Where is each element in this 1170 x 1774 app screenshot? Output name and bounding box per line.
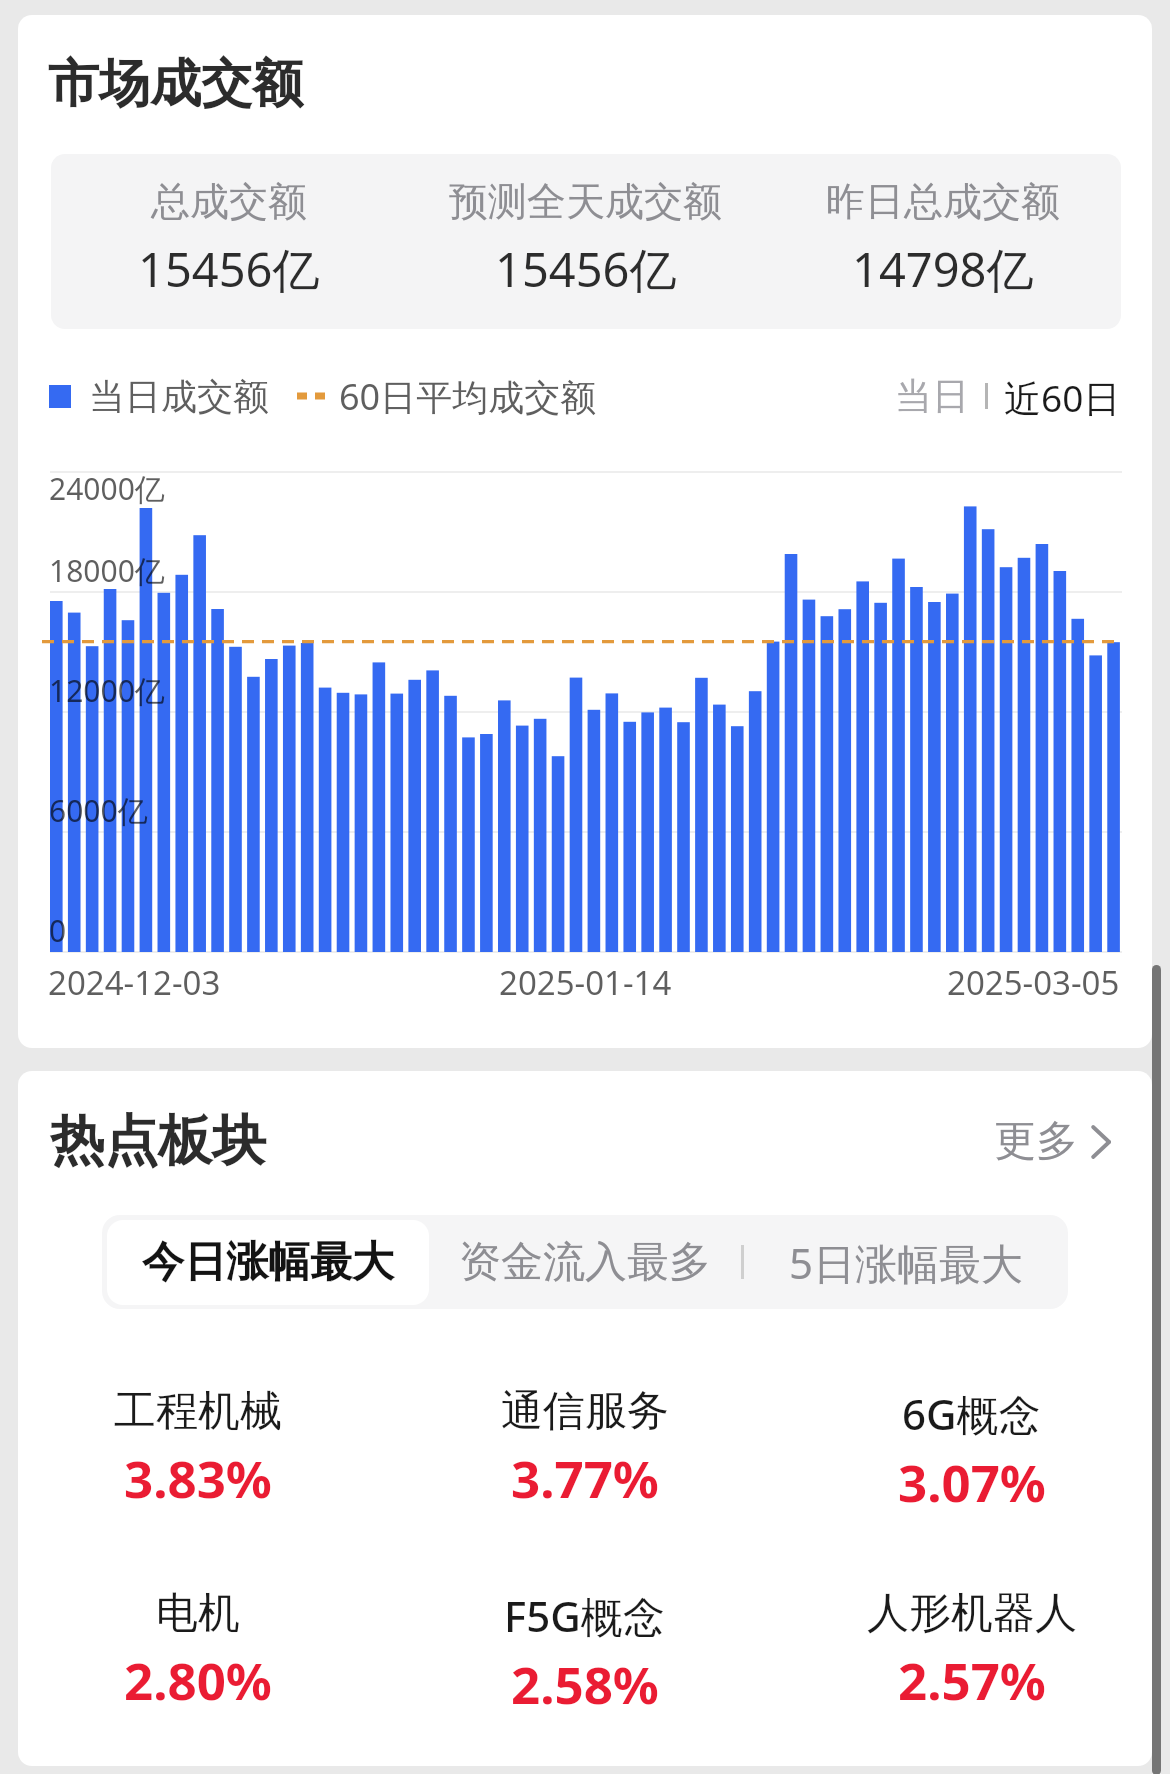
staticText: 电机 — [156, 1587, 240, 1640]
button[interactable]: 近60日 — [1004, 372, 1121, 420]
button[interactable]: 电机 — [18, 1587, 391, 1714]
staticText: 60日平均成交额 — [339, 372, 597, 420]
button[interactable]: 当日 — [895, 372, 969, 420]
staticText: 昨日总成交额 — [826, 177, 1060, 226]
staticText: 更多 — [994, 1115, 1078, 1168]
staticText: 市场成交额 — [48, 52, 303, 116]
staticText: 近60日 — [1004, 372, 1121, 420]
staticText: 热点板块 — [50, 1107, 266, 1175]
button[interactable]: 工程机械 — [18, 1385, 391, 1512]
staticText: 当日成交额 — [89, 374, 269, 419]
staticText: 资金流入最多 — [459, 1236, 711, 1289]
button[interactable]: 5日涨幅最大 — [744, 1220, 1068, 1305]
staticText: 2025-01-14 — [499, 960, 672, 1005]
staticText: 2024-12-03 — [48, 960, 221, 1005]
staticText: 今日涨幅最大 — [142, 1236, 394, 1289]
staticText: 人形机器人 — [867, 1587, 1077, 1640]
button[interactable]: 更多 — [994, 1115, 1122, 1168]
staticText: 2.57% — [898, 1645, 1046, 1714]
button[interactable]: 通信服务 — [391, 1385, 778, 1512]
button[interactable]: F5G概念 — [391, 1587, 778, 1718]
staticText: 3.77% — [511, 1443, 659, 1512]
button[interactable]: 今日涨幅最大 — [107, 1220, 429, 1305]
staticText: 15456亿 — [495, 237, 677, 301]
button[interactable]: 人形机器人 — [778, 1587, 1152, 1714]
staticText: 3.83% — [124, 1443, 272, 1512]
staticText: 总成交额 — [151, 177, 307, 226]
staticText: 15456亿 — [138, 237, 320, 301]
staticText: 2025-03-05 — [947, 960, 1120, 1005]
other: 更多 — [1086, 1124, 1122, 1160]
staticText: 3.07% — [898, 1447, 1046, 1516]
staticText: 通信服务 — [501, 1385, 669, 1438]
staticText: 5日涨幅最大 — [789, 1234, 1024, 1291]
staticText: 2.58% — [511, 1649, 659, 1718]
staticText: 6G概念 — [902, 1385, 1041, 1442]
staticText: 工程机械 — [114, 1385, 282, 1438]
staticText: 14798亿 — [852, 237, 1034, 301]
button[interactable]: 资金流入最多 — [429, 1220, 741, 1305]
staticText: F5G概念 — [504, 1587, 665, 1644]
staticText: 2.80% — [124, 1645, 272, 1714]
staticText: 预测全天成交额 — [449, 177, 722, 226]
button[interactable]: 6G概念 — [778, 1385, 1152, 1516]
staticText: 当日 — [895, 373, 969, 420]
